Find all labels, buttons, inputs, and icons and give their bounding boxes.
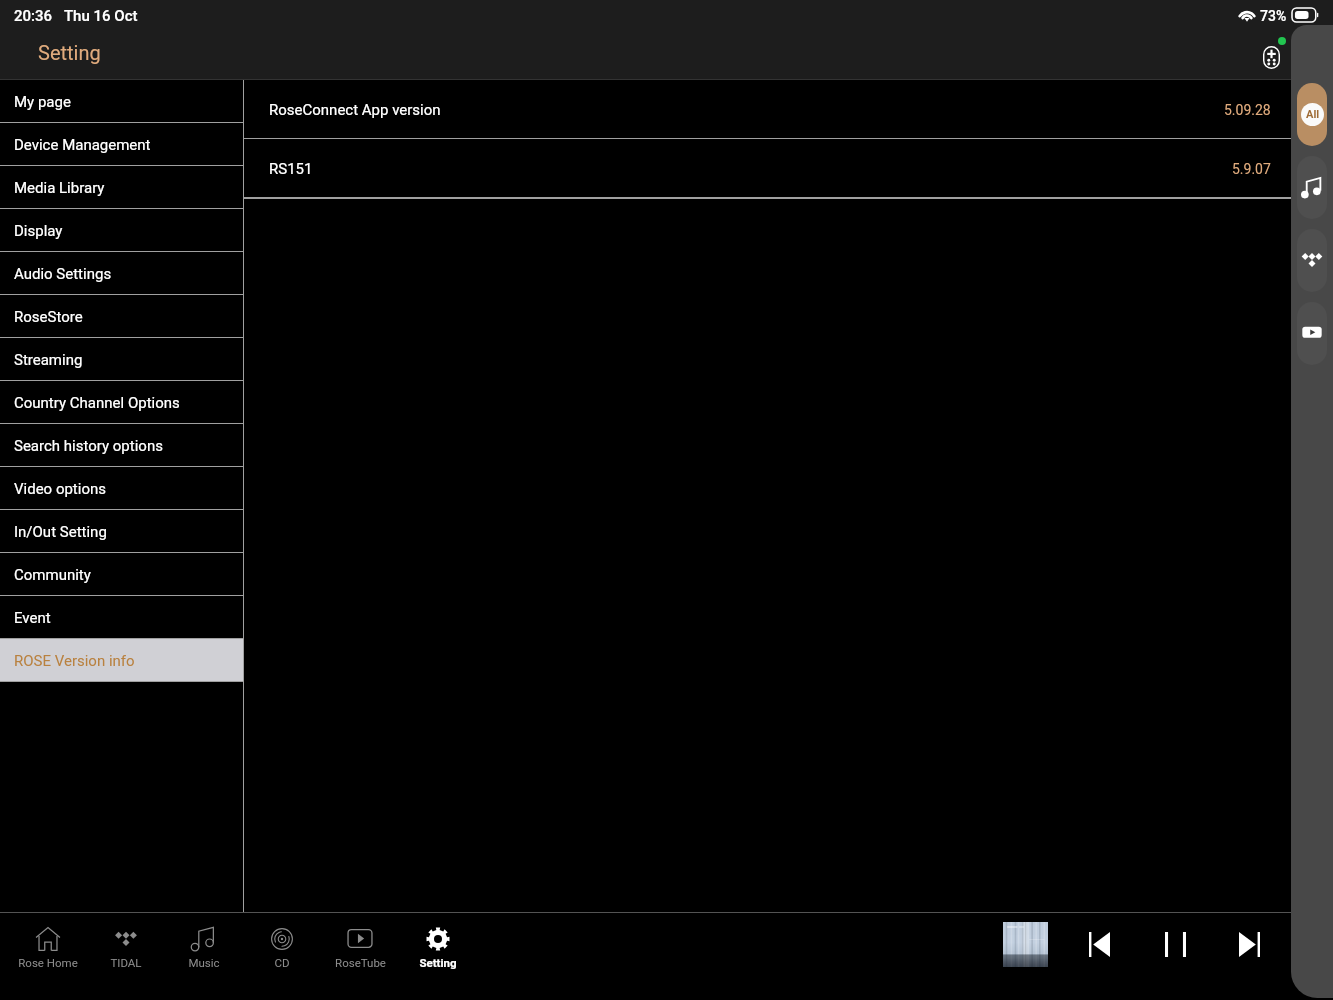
staticText: In/Out Setting xyxy=(14,523,107,541)
button[interactable]: My page xyxy=(0,80,243,123)
staticText: Display xyxy=(14,222,63,240)
button[interactable]: ROSE Version info xyxy=(0,639,243,682)
staticText: Country Channel Options xyxy=(14,394,180,412)
button[interactable]: Display xyxy=(0,209,243,252)
button[interactable]: CD xyxy=(243,913,321,1000)
button[interactable]: Next xyxy=(1229,924,1269,964)
staticText: TIDAL xyxy=(110,956,142,969)
button[interactable]: Search history options xyxy=(0,424,243,467)
staticText: Music xyxy=(188,956,220,969)
staticText: Thu 16 Oct xyxy=(64,7,138,25)
staticText: CD xyxy=(274,956,290,969)
button[interactable]: Community xyxy=(0,553,243,596)
button[interactable]: Device Management xyxy=(0,123,243,166)
button[interactable]: Pause xyxy=(1155,924,1195,964)
staticText: RS151 xyxy=(269,160,313,178)
button[interactable]: TIDAL xyxy=(87,913,165,1000)
staticText: RoseConnect App version xyxy=(269,101,441,119)
staticText: 5.9.07 xyxy=(1232,161,1271,177)
staticText: Rose Home xyxy=(18,956,78,969)
staticText: RoseTube xyxy=(335,956,386,969)
staticText: Search history options xyxy=(14,437,163,455)
button[interactable]: Music xyxy=(1297,156,1327,219)
staticText: Video options xyxy=(14,480,106,498)
staticText: Event xyxy=(14,609,51,627)
staticText: All xyxy=(1306,108,1320,121)
button[interactable]: Video options xyxy=(0,467,243,510)
staticText: 5.09.28 xyxy=(1224,102,1271,118)
button[interactable]: Media Library xyxy=(0,166,243,209)
button[interactable]: Tidal xyxy=(1297,229,1327,292)
staticText: 20:36 xyxy=(14,7,53,25)
button[interactable]: RoseTube xyxy=(321,913,399,1000)
staticText: Setting xyxy=(38,41,101,64)
button[interactable]: Setting xyxy=(399,913,477,1000)
button[interactable]: Now playing album art xyxy=(1003,922,1048,967)
button[interactable]: RoseConnect App version xyxy=(244,80,1333,139)
staticText: My page xyxy=(14,93,71,111)
staticText: ROSE Version info xyxy=(14,652,135,670)
staticText: 73% xyxy=(1260,8,1287,24)
button[interactable]: RS151 xyxy=(244,139,1333,198)
staticText: Community xyxy=(14,566,91,584)
button[interactable]: Streaming xyxy=(0,338,243,381)
button[interactable]: Event xyxy=(0,596,243,639)
staticText: Setting xyxy=(419,956,457,969)
button[interactable]: Remote control xyxy=(1254,38,1288,72)
button[interactable]: Music xyxy=(165,913,243,1000)
staticText: RoseStore xyxy=(14,308,83,326)
button[interactable]: Audio Settings xyxy=(0,252,243,295)
staticText: Streaming xyxy=(14,351,83,369)
button[interactable]: In/Out Setting xyxy=(0,510,243,553)
button[interactable]: Rose Home xyxy=(9,913,87,1000)
button[interactable]: RoseTube xyxy=(1297,302,1327,365)
staticText: Device Management xyxy=(14,136,151,154)
staticText: Audio Settings xyxy=(14,265,112,283)
button[interactable]: Country Channel Options xyxy=(0,381,243,424)
button[interactable]: Previous xyxy=(1079,924,1119,964)
button[interactable]: RoseStore xyxy=(0,295,243,338)
staticText: Media Library xyxy=(14,179,105,197)
button[interactable]: All sources xyxy=(1297,83,1327,146)
